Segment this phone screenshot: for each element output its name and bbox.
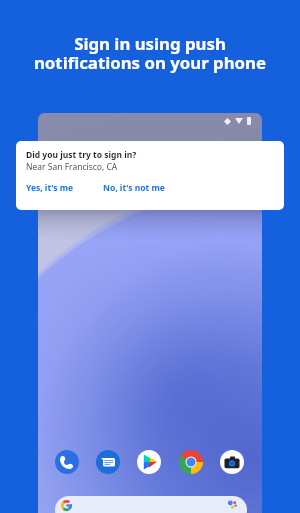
staticText: Yes, it's me bbox=[26, 182, 74, 194]
staticText: Sign in using push notifications on your… bbox=[8, 32, 292, 74]
button[interactable]: No, it's not me bbox=[97, 178, 171, 198]
staticText: Did you just try to sign in? bbox=[26, 149, 137, 161]
button[interactable]: Search bbox=[55, 496, 247, 513]
button[interactable]: Messages bbox=[96, 450, 120, 474]
button[interactable]: Play Store bbox=[137, 450, 161, 474]
button[interactable]: Camera bbox=[220, 450, 244, 474]
staticText: Near San Francisco, CA bbox=[26, 161, 118, 173]
button[interactable]: Yes, it's me bbox=[16, 178, 84, 198]
button[interactable]: Phone bbox=[55, 450, 79, 474]
button[interactable]: Chrome bbox=[179, 450, 203, 474]
staticText: No, it's not me bbox=[103, 182, 165, 194]
